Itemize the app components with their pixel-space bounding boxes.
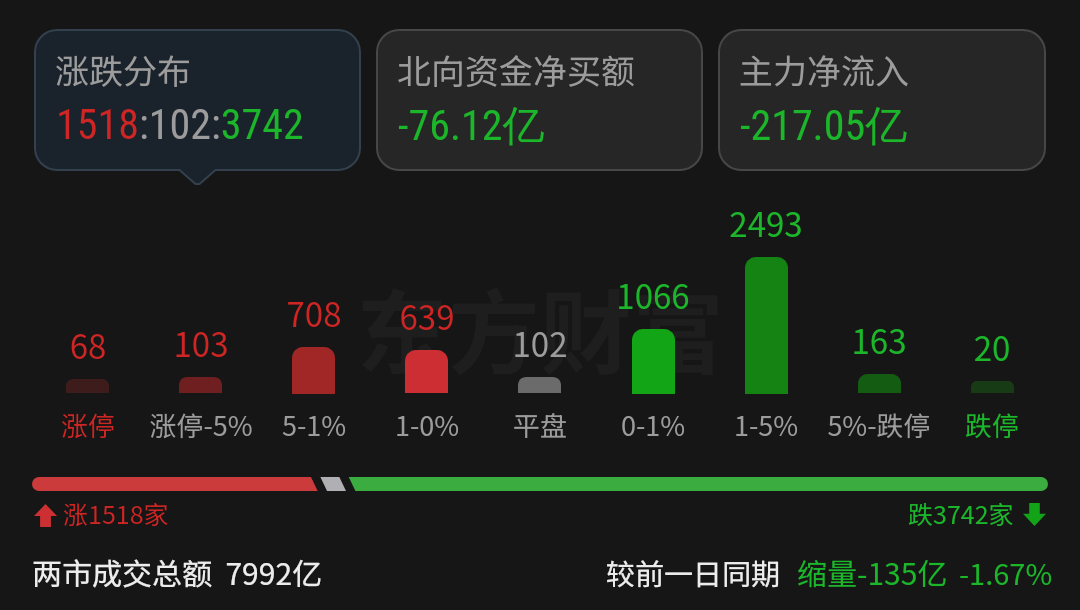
other: Declining stocks — [1023, 503, 1046, 526]
staticText: 639 — [367, 292, 487, 340]
staticText: 主力净流入 — [739, 45, 909, 94]
staticText: 平盘 — [480, 405, 600, 444]
button[interactable]: Advancing stocks — [33, 496, 168, 532]
staticText: 68 — [28, 321, 148, 369]
button[interactable]: 北向资金净买额 — [377, 30, 702, 186]
other: Advancing stocks — [34, 504, 57, 527]
staticText: 5-1% — [254, 405, 374, 444]
staticText: 跌停 — [932, 405, 1052, 444]
staticText: 涨停 — [28, 405, 148, 444]
button[interactable] — [518, 377, 561, 393]
staticText: 0-1% — [593, 405, 713, 444]
button[interactable] — [632, 329, 675, 394]
staticText: 1066 — [593, 271, 713, 319]
button[interactable] — [858, 374, 901, 393]
button[interactable] — [292, 347, 335, 394]
staticText: 缩量-135亿 — [797, 550, 948, 593]
staticText: 东方财富 — [356, 260, 725, 393]
staticText: 163 — [819, 316, 939, 364]
button[interactable] — [179, 377, 222, 393]
staticText: 708 — [254, 289, 374, 337]
staticText: -76.12亿 — [398, 100, 545, 153]
button[interactable]: 涨跌分布 — [35, 30, 360, 186]
button[interactable]: 跌3742家 — [906, 496, 1048, 532]
staticText: -1.67% — [959, 551, 1053, 593]
staticText: 103 — [141, 319, 261, 367]
staticText: 102 — [480, 319, 600, 367]
button[interactable] — [745, 257, 788, 394]
staticText: 较前一日同期 — [606, 551, 781, 593]
staticText: 1-5% — [706, 405, 826, 444]
staticText: 涨跌分布 — [55, 45, 191, 94]
button[interactable]: 主力净流入 — [719, 30, 1045, 186]
button[interactable] — [405, 350, 448, 393]
staticText: 涨1518家 — [63, 495, 169, 531]
button[interactable] — [66, 379, 109, 393]
staticText: 跌3742家 — [908, 495, 1014, 531]
staticText: 北向资金净买额 — [397, 45, 635, 94]
staticText: 1518:102:3742 — [56, 100, 304, 149]
button[interactable] — [971, 381, 1014, 393]
staticText: 涨停-5% — [141, 405, 261, 444]
staticText: 1-0% — [367, 405, 487, 444]
staticText: 两市成交总额 7992亿 — [32, 550, 323, 593]
staticText: -217.05亿 — [740, 100, 908, 153]
staticText: 20 — [932, 323, 1052, 371]
staticText: 2493 — [706, 199, 826, 247]
staticText: 5%-跌停 — [819, 405, 939, 444]
